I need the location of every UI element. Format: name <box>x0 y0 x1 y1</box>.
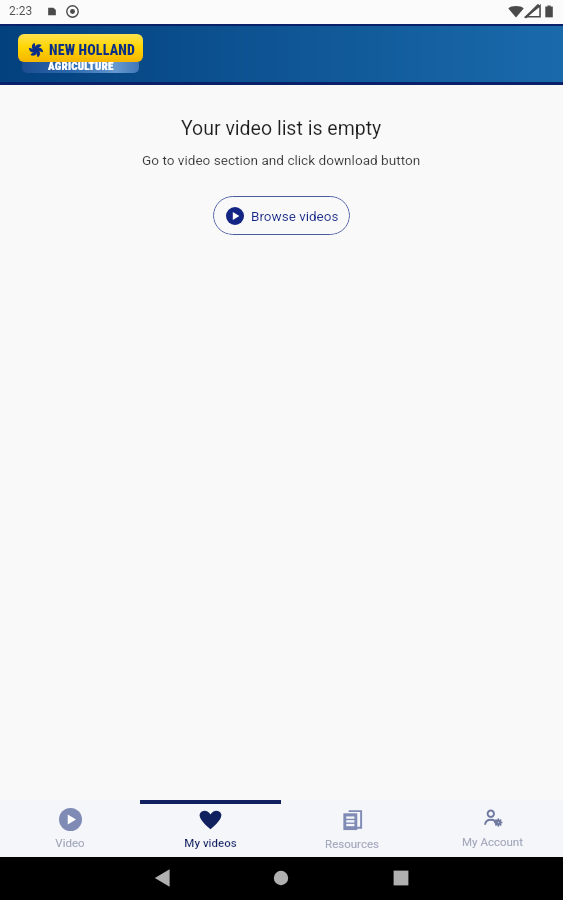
button[interactable]: New Holland Agriculture <box>18 34 143 73</box>
staticText: NEW HOLLAND <box>49 42 136 58</box>
staticText: Video <box>55 836 85 849</box>
button[interactable]: Home <box>271 868 291 888</box>
button[interactable]: My videos <box>140 800 281 857</box>
staticText: My videos <box>184 836 237 849</box>
staticText: My Account <box>462 835 523 848</box>
staticText: Go to video section and click download b… <box>142 152 421 168</box>
staticText: Your video list is empty <box>181 117 382 140</box>
button[interactable]: Resources <box>281 800 422 857</box>
button[interactable]: Video <box>0 800 140 857</box>
staticText: Resources <box>325 837 379 850</box>
button[interactable]: Browse videos <box>213 196 350 235</box>
button[interactable]: My Account <box>422 800 563 857</box>
staticText: AGRICULTURE <box>48 60 114 73</box>
staticText: Browse videos <box>251 208 338 224</box>
button[interactable]: Back <box>152 868 172 888</box>
button[interactable]: Recents <box>391 868 411 888</box>
staticText: 2:23 <box>9 4 33 18</box>
